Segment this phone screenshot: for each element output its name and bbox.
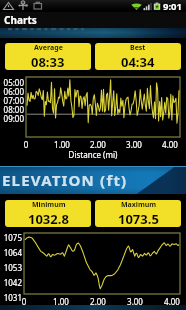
button[interactable]: Best xyxy=(95,43,181,70)
staticText: 3.00 xyxy=(123,296,147,307)
staticText: 0 xyxy=(14,139,38,150)
staticText: 1053 xyxy=(0,262,22,273)
staticText: 1064 xyxy=(0,247,22,258)
staticText: 1073.5 xyxy=(118,210,159,227)
staticText: 3.00 xyxy=(122,139,146,150)
staticText: Charts xyxy=(4,13,37,27)
staticText: 08:00 xyxy=(0,104,24,115)
staticText: 07:00 xyxy=(0,95,24,106)
staticText: 06:00 xyxy=(0,86,24,97)
staticText: 1032.8 xyxy=(28,210,69,227)
staticText: 9:01 xyxy=(163,0,182,12)
staticText: Distance (mi) xyxy=(0,149,186,160)
button[interactable]: Minimum xyxy=(5,200,91,227)
staticText: Maximum xyxy=(121,200,157,210)
staticText: 4.00 xyxy=(158,139,182,150)
staticText: 1075 xyxy=(0,232,22,243)
button[interactable] xyxy=(0,28,186,38)
staticText: Best xyxy=(130,43,146,53)
staticText: 08:33 xyxy=(31,53,65,70)
staticText: 04:34 xyxy=(121,53,155,70)
staticText: 4.00 xyxy=(160,296,184,307)
staticText: 05:00 xyxy=(0,77,24,88)
staticText: 0 xyxy=(12,296,36,307)
staticText: Average xyxy=(34,43,63,53)
staticText: 1.00 xyxy=(49,296,73,307)
staticText: 1042 xyxy=(0,277,22,288)
staticText: 1031 xyxy=(0,292,22,303)
staticText: 1.00 xyxy=(50,139,74,150)
staticText: 2.00 xyxy=(86,296,110,307)
staticText: ELEVATION (ft) xyxy=(2,170,128,190)
button[interactable]: Maximum xyxy=(95,200,181,227)
button[interactable]: Average xyxy=(5,43,91,70)
button[interactable]: ELEVATION (ft) xyxy=(0,166,186,194)
staticText: Minimum xyxy=(32,200,66,210)
button[interactable]: Charts xyxy=(0,12,186,28)
staticText: 09:00 xyxy=(0,113,24,124)
staticText: 2.00 xyxy=(86,139,110,150)
